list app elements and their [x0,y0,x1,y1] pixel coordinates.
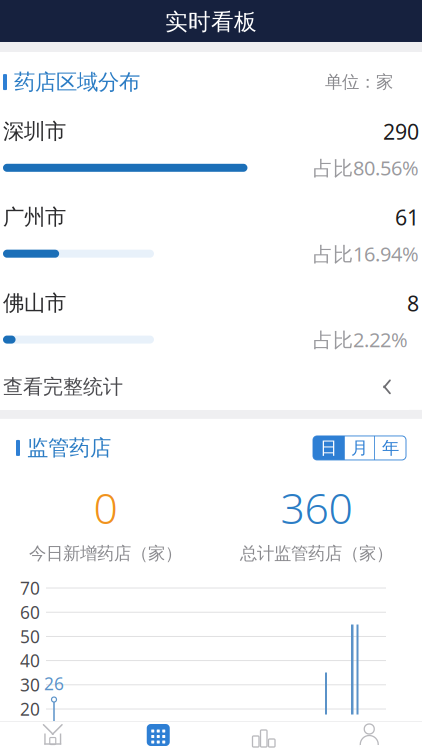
staticText: 50 [20,625,40,648]
staticText: 60 [20,601,40,624]
button[interactable]: 实时看板 [0,2,422,42]
staticText: 290 [383,117,419,145]
button[interactable]: 统计报表 [211,721,316,750]
staticText: 61 [395,203,419,231]
staticText: 深圳市 [3,118,66,144]
staticText: 20 [20,697,40,720]
staticText: 40 [20,649,40,672]
staticText: 360 [280,479,352,536]
staticText: 占比16.94% [313,240,419,267]
staticText: 26 [44,672,64,695]
staticText: 月 [351,437,368,459]
staticText: 药店区域分布 [14,69,140,95]
button[interactable]: 年 [375,436,406,460]
staticText: 监管药店 [27,435,111,461]
staticText: 日 [320,437,337,459]
staticText: 70 [20,576,40,599]
button[interactable]: 主页 [0,721,105,750]
staticText: 今日新增药店（家） [29,543,182,564]
button[interactable]: 月 [344,436,375,460]
staticText: 佛山市 [3,290,66,316]
button[interactable]: 日 [313,436,344,460]
button[interactable]: 查看完整统计 [0,364,409,410]
staticText: 单位：家 [325,71,393,93]
staticText: 占比2.22% [313,326,408,353]
staticText: 年 [382,437,399,459]
staticText: 总计监管药店（家） [240,543,393,564]
staticText: 30 [20,673,40,696]
staticText: 实时看板 [165,8,257,36]
button[interactable]: 个人中心 [316,721,422,750]
staticText: 8 [407,289,419,317]
button[interactable]: 实时看板 [105,721,211,750]
staticText: 广州市 [3,204,66,230]
staticText: 占比80.56% [313,154,419,181]
staticText: 查看完整统计 [3,375,123,399]
staticText: 0 [93,479,117,536]
